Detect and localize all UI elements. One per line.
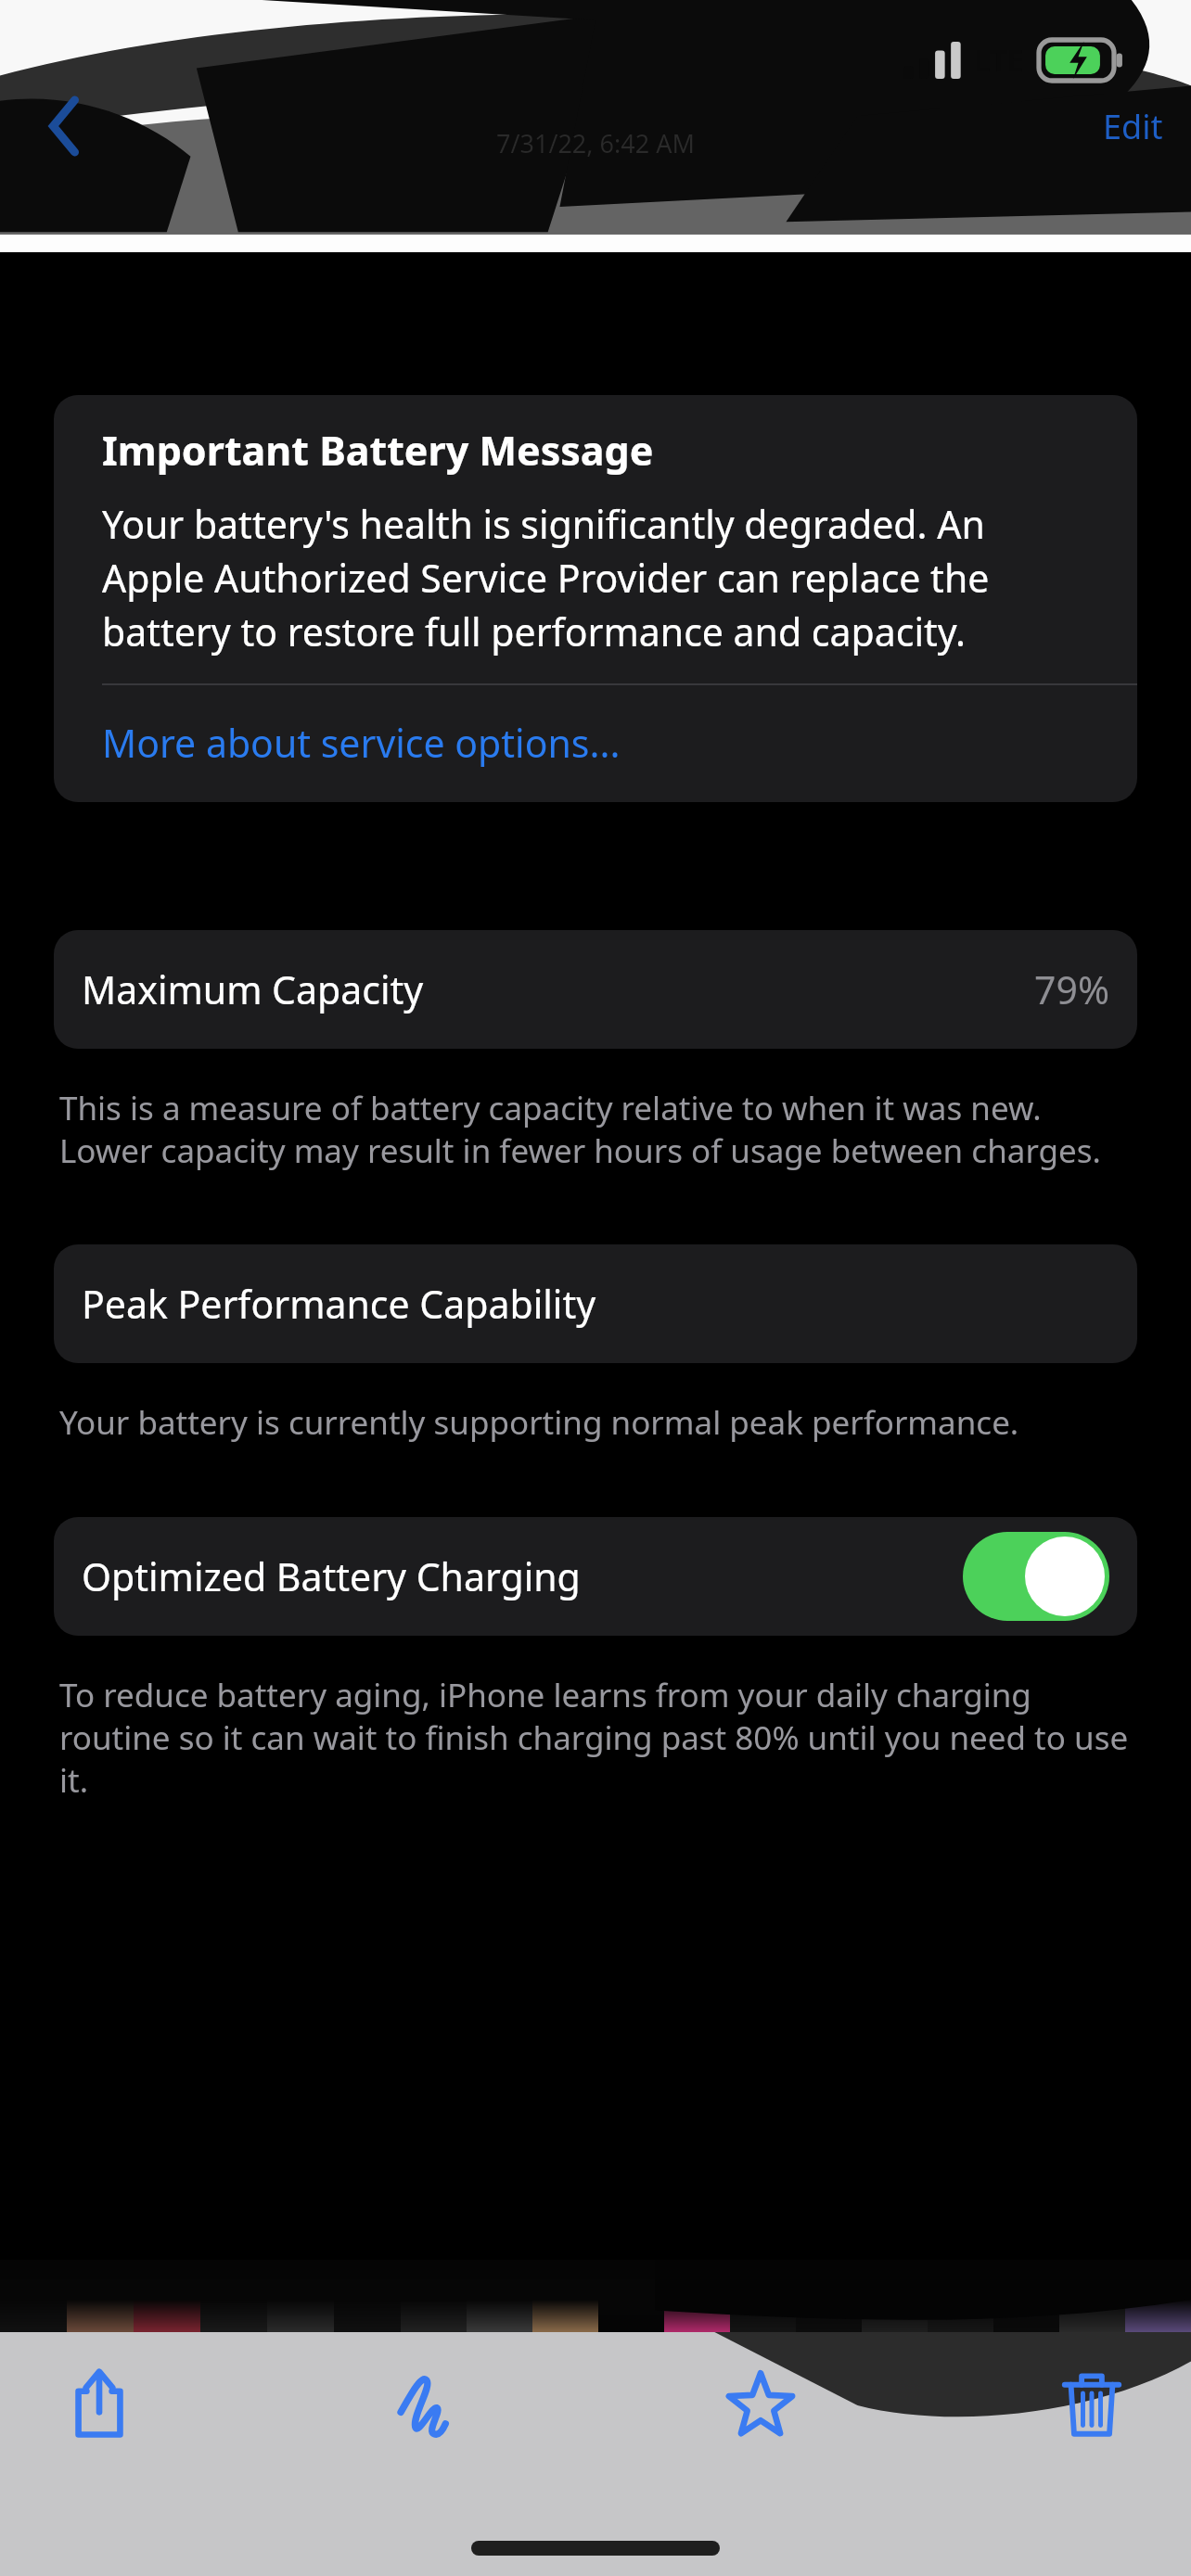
staticText: Your battery is currently supporting nor… bbox=[59, 1400, 1135, 1445]
staticText: More about service options... bbox=[102, 717, 621, 769]
staticText: 79% bbox=[1034, 963, 1109, 1015]
button[interactable]: Back bbox=[24, 84, 108, 168]
button[interactable]: Markup bbox=[370, 2343, 491, 2464]
button[interactable]: Optimized Battery Charging bbox=[54, 1517, 1137, 1636]
staticText: Your battery's health is significantly d… bbox=[102, 498, 1089, 657]
staticText: 7/31/22, 6:42 AM bbox=[496, 126, 695, 160]
button[interactable]: Share bbox=[39, 2343, 160, 2464]
staticText: Optimized Battery Charging bbox=[82, 1550, 581, 1602]
staticText: Peak Performance Capability bbox=[82, 1278, 596, 1330]
staticText: Important Battery Message bbox=[102, 423, 654, 478]
staticText: This is a measure of battery capacity re… bbox=[59, 1086, 1135, 1172]
staticText: Edit bbox=[1103, 104, 1163, 149]
button[interactable]: Favorite bbox=[700, 2343, 821, 2464]
button[interactable]: More about service options... bbox=[54, 685, 1137, 802]
button[interactable]: Optimized Battery Charging toggle bbox=[963, 1532, 1109, 1621]
button[interactable]: Delete bbox=[1031, 2343, 1152, 2464]
button[interactable]: Peak Performance Capability bbox=[54, 1244, 1137, 1363]
staticText: To reduce battery aging, iPhone learns f… bbox=[59, 1673, 1135, 1802]
staticText: Maximum Capacity bbox=[82, 963, 424, 1015]
button[interactable]: Edit bbox=[1095, 95, 1171, 159]
button[interactable]: Maximum Capacity bbox=[54, 930, 1137, 1049]
